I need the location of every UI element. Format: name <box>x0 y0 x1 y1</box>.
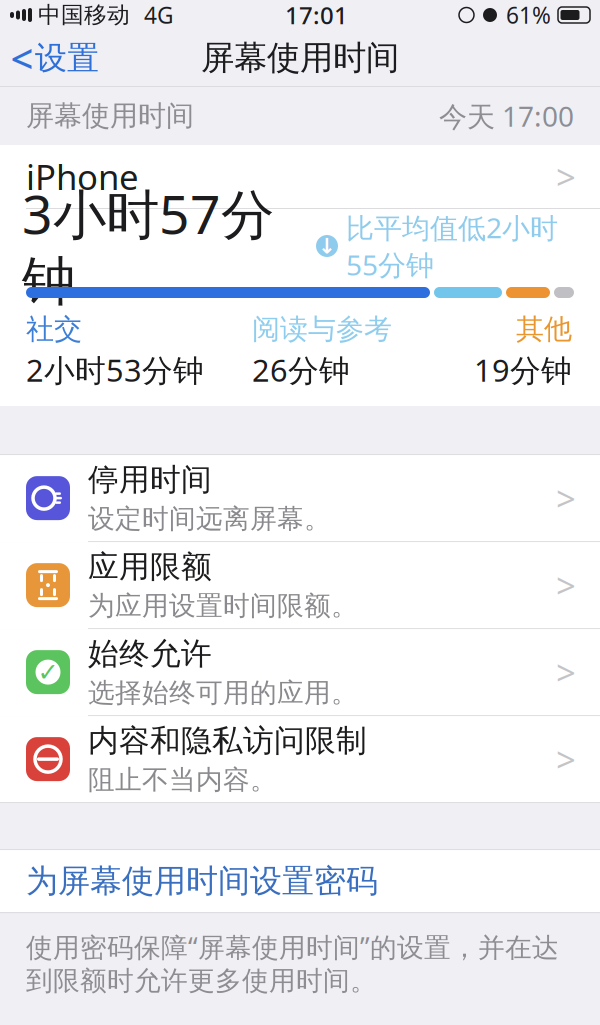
staticText: iPhone <box>26 153 139 199</box>
staticText: 阻止不当内容。 <box>88 764 277 796</box>
staticText: 应用限额 <box>88 548 212 586</box>
staticText: 设定时间远离屏幕。 <box>88 503 331 535</box>
staticText: 3小时57分钟 <box>22 178 274 314</box>
staticText: 61% <box>506 0 551 30</box>
staticText: 2小时53分钟 <box>26 349 204 390</box>
staticText: 为应用设置时间限额。 <box>88 590 358 622</box>
staticText: 选择始终可用的应用。 <box>88 677 358 709</box>
staticText: 中国移动 <box>38 1 130 29</box>
staticText: 阅读与参考 <box>252 312 392 346</box>
staticText: 社交 <box>26 312 82 346</box>
staticText: 始终允许 <box>88 635 212 673</box>
staticText: 26分钟 <box>252 349 350 390</box>
button[interactable]: 停用时间 <box>0 455 600 542</box>
staticText: 屏幕使用时间 <box>26 99 194 133</box>
staticText: ✓ <box>37 658 58 686</box>
staticText: > <box>556 736 576 782</box>
button[interactable]: iPhone <box>0 145 600 208</box>
staticText: 17:01 <box>285 0 348 31</box>
staticText: 使用密码保障“屏幕使用时间”的设置，并在达到限额时允许更多使用时间。 <box>26 929 559 997</box>
staticText: > <box>556 562 576 608</box>
staticText: 设置 <box>35 38 99 78</box>
staticText: 19分钟 <box>474 349 572 390</box>
staticText: > <box>556 475 576 521</box>
button[interactable]: 为屏幕使用时间设置密码 <box>0 850 600 912</box>
button[interactable]: 应用限额 <box>0 542 600 629</box>
staticText: > <box>556 153 576 199</box>
staticText: 今天 17:00 <box>439 97 574 135</box>
staticText: < <box>10 31 33 84</box>
staticText: ↓ <box>318 234 336 258</box>
staticText: 其他 <box>516 312 572 346</box>
staticText: 比平均值低2小时55分钟 <box>346 209 558 283</box>
staticText: 4G <box>144 0 174 30</box>
button[interactable]: < <box>0 32 109 84</box>
staticText: > <box>556 649 576 695</box>
staticText: 屏幕使用时间 <box>201 37 399 78</box>
button[interactable]: 内容和隐私访问限制 <box>0 716 600 802</box>
staticText: 为屏幕使用时间设置密码 <box>26 861 378 901</box>
button[interactable]: ✓ <box>0 629 600 716</box>
staticText: 停用时间 <box>88 461 212 499</box>
staticText: 内容和隐私访问限制 <box>88 722 367 760</box>
